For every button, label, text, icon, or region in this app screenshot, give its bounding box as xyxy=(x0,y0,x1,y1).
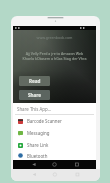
button[interactable]: Read xyxy=(19,76,50,86)
button[interactable]: Bluetooth xyxy=(13,151,96,160)
button[interactable]: Share Link xyxy=(13,139,96,151)
staticText: Share This App... xyxy=(17,106,52,112)
other: Navigation bar xyxy=(13,160,96,169)
staticText: Ajj Velly Perd a jre to Amazon Web Khael… xyxy=(18,51,91,61)
staticText: Messaging xyxy=(27,130,50,136)
button[interactable]: Barcode Scanner xyxy=(13,115,96,127)
staticText: Share xyxy=(28,92,41,98)
button[interactable]: Share xyxy=(19,90,50,100)
staticText: Bluetooth xyxy=(27,153,48,159)
staticText: www.greenbook.com xyxy=(13,35,96,40)
button[interactable]: Messaging xyxy=(13,127,96,139)
staticText: Read xyxy=(29,78,41,84)
staticText: Share Link xyxy=(27,142,49,148)
staticText: Barcode Scanner xyxy=(27,118,62,124)
